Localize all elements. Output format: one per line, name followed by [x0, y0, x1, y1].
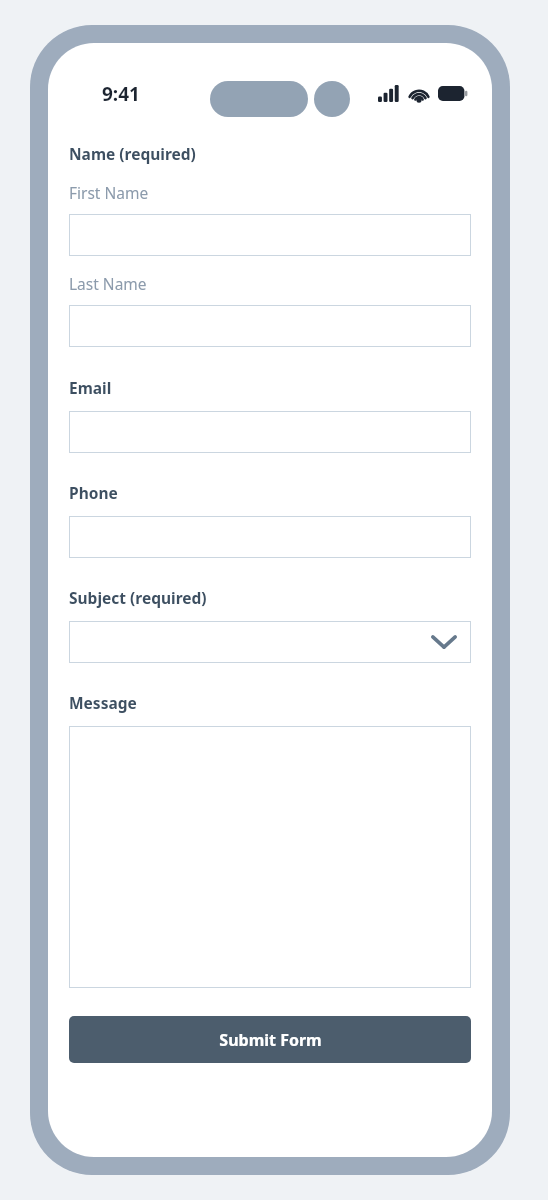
button[interactable]: Message input: [69, 726, 471, 988]
button[interactable]: First Name input: [69, 214, 471, 256]
staticText: 9:41: [102, 81, 140, 107]
staticText: Email: [69, 377, 112, 398]
button[interactable]: Last Name input: [69, 305, 471, 347]
button[interactable]: Submit Form: [69, 1016, 471, 1063]
button[interactable]: Email input: [69, 411, 471, 453]
button[interactable]: Phone input: [69, 516, 471, 558]
staticText: Phone: [69, 482, 118, 503]
button[interactable]: Subject dropdown: [69, 621, 471, 663]
staticText: Submit Form: [219, 1029, 322, 1051]
staticText: First Name: [69, 182, 149, 203]
staticText: Message: [69, 692, 137, 713]
staticText: Subject (required): [69, 587, 207, 608]
staticText: Last Name: [69, 273, 147, 294]
staticText: Name (required): [69, 143, 196, 164]
